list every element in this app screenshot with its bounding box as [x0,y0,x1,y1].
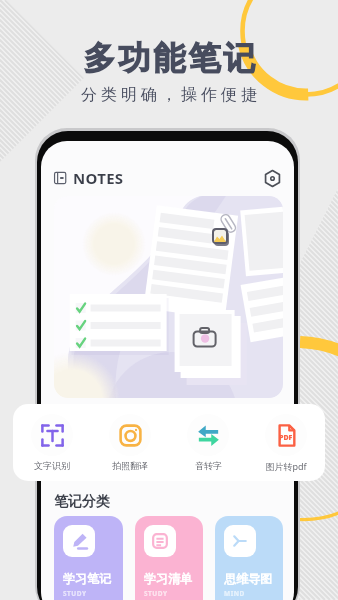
button[interactable]: PDF [247,404,325,481]
button[interactable]: 音转字 [169,404,247,481]
button[interactable]: Settings [261,167,283,189]
staticText: MIND [224,589,245,598]
staticText: 拍照翻译 [112,460,148,471]
button[interactable]: NOTES [54,167,124,189]
staticText: 学习清单 [144,571,192,586]
staticText: 思维导图 [224,571,272,586]
button[interactable]: 文字识别 [13,404,91,481]
staticText: 图片转pdf [265,460,307,472]
staticText: 多功能笔记 [82,38,257,78]
staticText: STUDY [144,589,168,598]
button[interactable]: 学习清单 [135,516,203,600]
button[interactable]: 思维导图 [215,516,283,600]
staticText: 学习笔记 [63,571,111,586]
staticText: STUDY [63,589,87,598]
staticText: 分类明确，操作便捷 [79,85,259,105]
staticText: NOTES [73,168,124,188]
staticText: 笔记分类 [54,493,110,511]
staticText: PDF [279,433,293,443]
staticText: 文字识别 [34,460,70,471]
button[interactable]: 学习笔记 [54,516,123,600]
button[interactable]: 拍照翻译 [91,404,169,481]
staticText: 音转字 [195,460,222,471]
